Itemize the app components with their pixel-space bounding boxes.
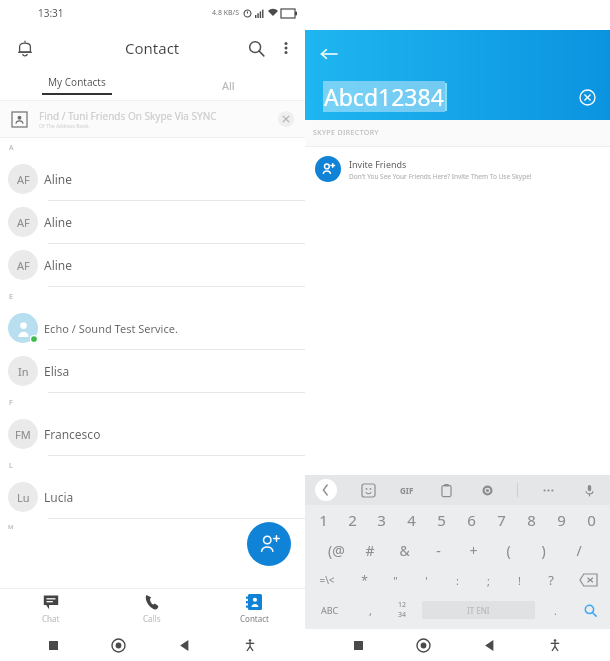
staticText: Invite Friends bbox=[349, 158, 407, 170]
button[interactable]: 2 bbox=[338, 505, 367, 535]
staticText: 12 bbox=[398, 600, 407, 610]
button[interactable]: # bbox=[353, 535, 387, 565]
staticText: Chat bbox=[42, 613, 60, 624]
button[interactable]: Find / Tuni Friends On Skype Via SYNC bbox=[0, 101, 305, 137]
button[interactable]: 8 bbox=[516, 505, 546, 535]
button[interactable]: Echo / Sound Test Service. bbox=[0, 307, 305, 350]
button[interactable]: IT ENI bbox=[422, 601, 535, 619]
button[interactable]: AF bbox=[0, 158, 305, 201]
staticText: Of The Address Book. bbox=[39, 123, 90, 130]
staticText: Calls bbox=[143, 613, 161, 624]
staticText: 4 bbox=[407, 510, 416, 530]
staticText: GIF bbox=[400, 485, 414, 496]
staticText: SKYPE DIRECTORY bbox=[313, 128, 379, 138]
staticText: =\< bbox=[319, 573, 335, 587]
staticText: : bbox=[456, 573, 459, 588]
button[interactable]: AF bbox=[0, 244, 305, 287]
button[interactable]: Voice input bbox=[578, 479, 600, 501]
button[interactable]: Search bbox=[571, 595, 610, 625]
staticText: ( bbox=[506, 541, 511, 560]
staticText: Lu bbox=[17, 490, 30, 505]
button[interactable]: AF bbox=[0, 201, 305, 244]
button[interactable]: In bbox=[0, 350, 305, 393]
button[interactable]: 12 bbox=[386, 595, 418, 625]
button[interactable]: ' bbox=[411, 565, 442, 595]
staticText: Contact bbox=[240, 613, 269, 624]
button[interactable]: 0 bbox=[576, 505, 606, 535]
staticText: F bbox=[9, 398, 13, 408]
staticText: IT ENI bbox=[467, 605, 490, 616]
button[interactable]: ABC bbox=[305, 595, 354, 625]
button[interactable]: ; bbox=[473, 565, 504, 595]
staticText: & bbox=[399, 541, 410, 560]
button[interactable]: More bbox=[537, 479, 559, 501]
button[interactable]: GIF bbox=[398, 483, 416, 498]
staticText: Echo / Sound Test Service. bbox=[44, 321, 178, 336]
staticText: 8 bbox=[527, 510, 536, 530]
button[interactable]: Lu bbox=[0, 476, 305, 519]
button[interactable]: : bbox=[442, 565, 473, 595]
staticText: A bbox=[9, 143, 14, 153]
button[interactable]: . bbox=[539, 595, 571, 625]
button[interactable]: & bbox=[387, 535, 421, 565]
staticText: 2 bbox=[348, 510, 357, 530]
button[interactable]: Search bbox=[239, 31, 273, 65]
staticText: ; bbox=[487, 573, 490, 588]
button[interactable]: / bbox=[561, 535, 596, 565]
button[interactable]: + bbox=[456, 535, 491, 565]
staticText: 5 bbox=[437, 510, 446, 530]
staticText: / bbox=[576, 541, 582, 560]
button[interactable]: More options bbox=[273, 35, 299, 61]
button[interactable]: 1 bbox=[309, 505, 338, 535]
button[interactable]: Back bbox=[315, 479, 337, 501]
button[interactable]: 3 bbox=[367, 505, 396, 535]
button[interactable]: , bbox=[354, 595, 386, 625]
button[interactable]: Chat bbox=[0, 589, 101, 629]
button[interactable]: " bbox=[380, 565, 411, 595]
button[interactable]: Clipboard bbox=[435, 479, 457, 501]
staticText: Find / Tuni Friends On Skype Via SYNC bbox=[39, 109, 217, 123]
button[interactable]: Calls bbox=[101, 589, 203, 629]
button[interactable]: 9 bbox=[546, 505, 576, 535]
staticText: AF bbox=[17, 215, 30, 230]
button[interactable]: ( bbox=[491, 535, 526, 565]
staticText: AF bbox=[17, 172, 30, 187]
button[interactable]: ! bbox=[504, 565, 535, 595]
button[interactable]: (@ bbox=[319, 535, 353, 565]
button[interactable]: FM bbox=[0, 413, 305, 456]
button[interactable]: * bbox=[349, 565, 380, 595]
button[interactable]: My Contacts bbox=[0, 70, 153, 100]
staticText: M bbox=[8, 523, 14, 531]
staticText: Don't You See Your Friends Here? Invite … bbox=[349, 172, 532, 181]
staticText: ABC bbox=[321, 604, 339, 616]
button[interactable]: Stickers bbox=[357, 479, 379, 501]
staticText: Contact bbox=[125, 38, 180, 58]
button[interactable]: Back bbox=[315, 40, 343, 68]
button[interactable]: All bbox=[152, 70, 305, 100]
button[interactable]: - bbox=[421, 535, 456, 565]
button[interactable]: 6 bbox=[456, 505, 486, 535]
button[interactable]: Clear bbox=[572, 82, 602, 112]
button[interactable]: =\< bbox=[305, 565, 349, 595]
staticText: 4.8 KB/S bbox=[212, 8, 240, 18]
staticText: In bbox=[18, 364, 29, 379]
button[interactable]: Notifications bbox=[8, 31, 42, 65]
staticText: * bbox=[361, 572, 368, 588]
button[interactable]: Invite Friends bbox=[305, 147, 610, 191]
button[interactable]: Backspace bbox=[566, 565, 610, 595]
staticText: All bbox=[222, 78, 235, 93]
button[interactable]: ? bbox=[535, 565, 566, 595]
button[interactable]: 4 bbox=[396, 505, 426, 535]
button[interactable]: 5 bbox=[426, 505, 456, 535]
button[interactable]: ) bbox=[526, 535, 561, 565]
button[interactable]: Add contact bbox=[247, 522, 291, 566]
button[interactable]: Dismiss bbox=[273, 106, 299, 132]
staticText: 3 bbox=[377, 510, 386, 530]
button[interactable]: 7 bbox=[486, 505, 516, 535]
button[interactable]: Contact bbox=[203, 589, 305, 629]
button[interactable]: Settings bbox=[476, 479, 498, 501]
staticText: Abcd12384 bbox=[324, 81, 444, 112]
staticText: Aline bbox=[44, 214, 73, 230]
staticText: 1 bbox=[319, 510, 328, 530]
staticText: FM bbox=[15, 427, 31, 442]
